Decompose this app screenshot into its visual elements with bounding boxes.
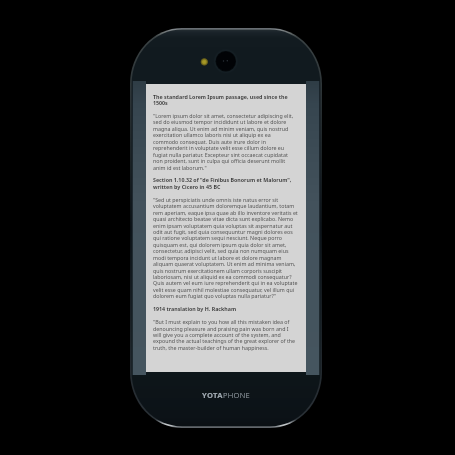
staticText: modi tempora incidunt ut labore et dolor… (153, 254, 282, 261)
staticText: denouncing pleasure and praising pain wa… (153, 325, 289, 332)
staticText: anim id est laborum." (153, 164, 207, 171)
staticText: magna aliqua. Ut enim ad minim veniam, q… (153, 125, 289, 132)
staticText: odit aut fugit, sed quia consequuntur ma… (153, 228, 293, 235)
staticText: sed do eiusmod tempor incididunt ut labo… (153, 118, 287, 125)
staticText: qui ratione voluptatem sequi nesciunt. N… (153, 234, 282, 241)
staticText: The standard Lorem Ipsum passage, used s… (153, 93, 288, 100)
button[interactable]: The standard Lorem Ipsum passage, used s… (146, 84, 306, 372)
staticText: "Lorem ipsum dolor sit amet, consectetur… (153, 112, 294, 119)
staticText: non proident, sunt in culpa qui officia … (153, 157, 286, 164)
staticText: velit esse quam nihil molestiae consequa… (153, 286, 295, 293)
staticText: reprehenderit in voluptate velit esse ci… (153, 144, 285, 151)
staticText: 1914 translation by H. Rackham (153, 305, 237, 312)
staticText: enim ipsam voluptatem quia voluptas sit … (153, 222, 293, 229)
staticText: YOTAPHONE (202, 390, 251, 400)
staticText: quis nostrum exercitationem ullam corpor… (153, 267, 283, 274)
staticText: quisquam est, qui dolorem ipsum quia dol… (153, 241, 287, 248)
staticText: 1500s (153, 99, 168, 106)
staticText: consectetur, adipisci velit, sed quia no… (153, 247, 289, 254)
staticText: Quis autem vel eum iure reprehenderit qu… (153, 279, 298, 286)
staticText: truth, the master-builder of human happi… (153, 344, 269, 351)
staticText: will give you a complete account of the … (153, 331, 281, 338)
staticText: written by Cicero in 45 BC (153, 183, 221, 190)
staticText: "Sed ut perspiciatis unde omnis iste nat… (153, 196, 279, 203)
staticText: "But I must explain to you how all this … (153, 318, 290, 325)
staticText: fugiat nulla pariatur. Excepteur sint oc… (153, 151, 288, 158)
staticText: voluptatem accusantium doloremque laudan… (153, 202, 295, 209)
staticText: aliquam quaerat voluptatem. Ut enim ad m… (153, 260, 296, 267)
staticText: quasi architecto beatae vitae dicta sunt… (153, 215, 294, 222)
staticText: dolorem eum fugiat quo voluptas nulla pa… (153, 292, 276, 299)
staticText: Section 1.10.32 of "de Finibus Bonorum e… (153, 176, 292, 183)
staticText: exercitation ullamco laboris nisi ut ali… (153, 131, 271, 138)
staticText: laboriosam, nisi ut aliquid ex ea commod… (153, 273, 292, 280)
staticText: expound the actual teachings of the grea… (153, 337, 296, 344)
staticText: commodo consequat. Duis aute irure dolor… (153, 138, 266, 145)
staticText: rem aperiam, eaque ipsa quae ab illo inv… (153, 209, 298, 216)
